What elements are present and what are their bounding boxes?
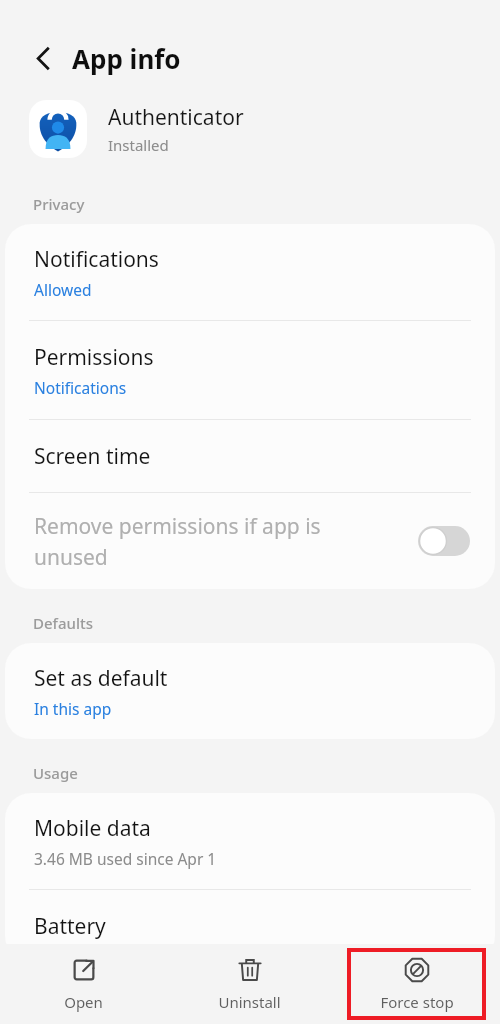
- staticText: Usage: [33, 763, 78, 783]
- button[interactable]: Force stop: [347, 948, 486, 1020]
- staticText: Installed: [108, 135, 169, 155]
- staticText: Privacy: [33, 194, 85, 214]
- staticText: Set as default: [34, 664, 168, 693]
- button[interactable]: Battery: [5, 890, 495, 962]
- staticText: Authenticator: [108, 103, 244, 132]
- staticText: App info: [72, 41, 181, 76]
- other: Open: [71, 957, 97, 983]
- staticText: Remove permissions if app is unused: [34, 512, 321, 571]
- button[interactable]: Open: [64, 948, 103, 1020]
- staticText: Force stop: [380, 992, 454, 1012]
- button[interactable]: Back: [20, 35, 66, 81]
- button[interactable]: Notifications: [5, 224, 495, 320]
- button[interactable]: Remove permissions if app is unused: [5, 493, 495, 589]
- button[interactable]: Set as default: [5, 643, 495, 739]
- staticText: Open: [64, 992, 103, 1012]
- staticText: Battery: [34, 912, 106, 941]
- staticText: Allowed: [34, 279, 92, 300]
- staticText: Uninstall: [218, 992, 281, 1012]
- staticText: Mobile data: [34, 814, 151, 843]
- staticText: 3.46 MB used since Apr 1: [34, 848, 217, 869]
- other: Force stop: [404, 957, 430, 983]
- staticText: In this app: [34, 698, 112, 719]
- staticText: Permissions: [34, 343, 154, 372]
- staticText: Defaults: [33, 613, 94, 633]
- staticText: Notifications: [34, 377, 127, 398]
- button[interactable]: Screen time: [5, 420, 495, 492]
- button[interactable]: Permissions: [5, 321, 495, 419]
- button[interactable]: Mobile data: [5, 793, 495, 889]
- other: Uninstall: [237, 957, 263, 983]
- staticText: Notifications: [34, 245, 159, 274]
- staticText: Screen time: [34, 442, 151, 471]
- button[interactable]: Uninstall: [218, 948, 281, 1020]
